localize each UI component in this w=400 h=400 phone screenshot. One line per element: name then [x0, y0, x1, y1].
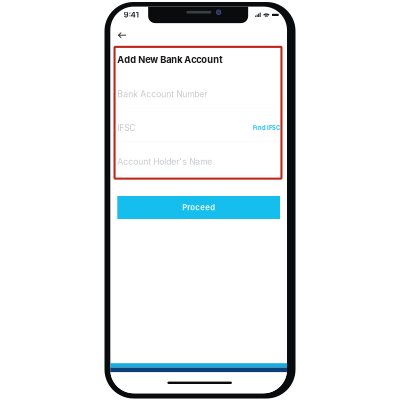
staticText: 9:41	[124, 10, 139, 19]
button[interactable]: Bank Account Number	[117, 75, 280, 108]
button[interactable]: Back	[112, 23, 132, 43]
button[interactable]: Proceed	[117, 196, 280, 219]
staticText: Bank Account Number	[117, 89, 207, 99]
staticText: Proceed	[182, 203, 215, 212]
staticText: Add New Bank Account	[117, 54, 222, 65]
staticText: IFSC	[117, 123, 135, 133]
staticText: Find IFSC	[253, 124, 280, 131]
staticText: Account Holder's Name	[117, 157, 212, 167]
button[interactable]: IFSC	[117, 108, 280, 142]
button[interactable]: Account Holder's Name	[117, 142, 280, 176]
